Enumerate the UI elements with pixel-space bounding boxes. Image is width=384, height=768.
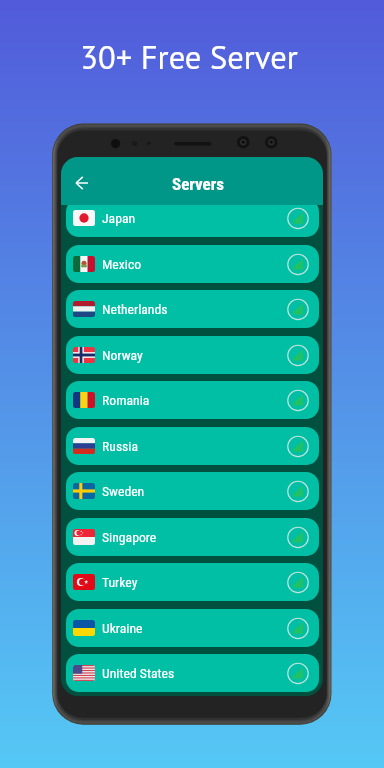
staticText: Turkey [102,574,138,590]
button[interactable]: Romania [66,381,319,419]
button[interactable]: Ukraine [66,609,319,647]
staticText: Singapore [102,529,157,545]
button[interactable]: Turkey [66,563,319,601]
button[interactable]: Norway [66,336,319,374]
button[interactable]: Singapore [66,518,319,556]
button[interactable]: United States [66,654,319,692]
button[interactable]: Netherlands [66,290,319,328]
staticText: Japan [102,210,136,226]
button[interactable]: Japan [66,199,319,237]
staticText: Servers [172,174,225,194]
button[interactable]: Russia [66,427,319,465]
staticText: Ukraine [102,620,143,636]
button[interactable]: Mexico [66,245,319,283]
button[interactable]: Sweden [66,472,319,510]
staticText: Romania [102,392,150,408]
staticText: Netherlands [102,301,168,317]
button[interactable]: Back [63,169,89,197]
staticText: 30+ Free Server [0,36,381,78]
staticText: Mexico [102,256,142,272]
staticText: Norway [102,347,143,363]
staticText: Sweden [102,483,145,499]
staticText: Russia [102,438,139,454]
staticText: United States [102,665,175,681]
